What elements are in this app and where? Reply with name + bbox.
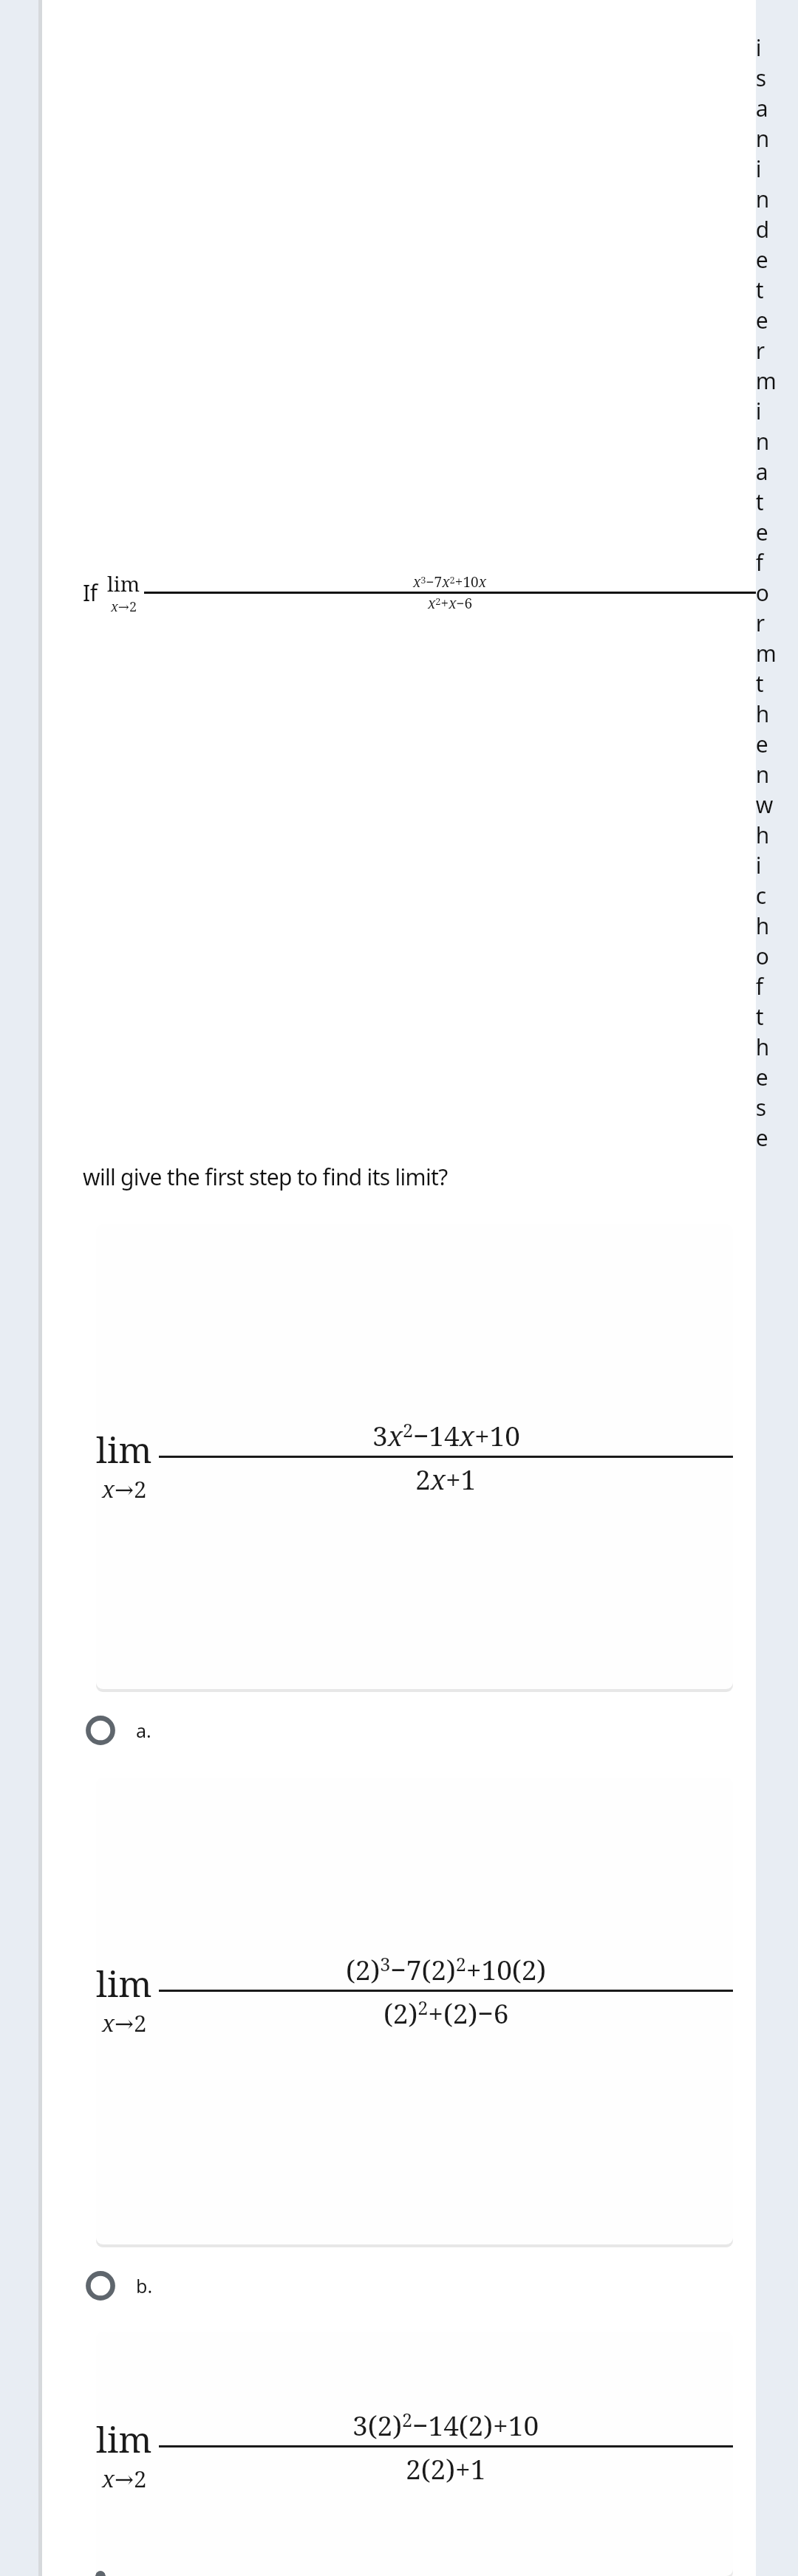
staticText: 2x+1 (415, 1460, 477, 1497)
staticText: lim (96, 1425, 152, 1473)
staticText: x3−7x2+10x (413, 572, 487, 592)
button[interactable]: a. (75, 1689, 756, 1772)
staticText: x→2 (111, 597, 137, 616)
staticText: lim (107, 569, 140, 597)
staticText: (2)2+(2)−6 (383, 1994, 509, 2031)
staticText: b. (136, 2273, 153, 2298)
staticText: will give the first step to find its lim… (83, 1162, 448, 1192)
staticText: If (83, 578, 98, 608)
staticText: x→2 (102, 1473, 147, 1504)
button[interactable]: b. (75, 2244, 756, 2327)
staticText: 3(2)2−14(2)+10 (352, 2406, 539, 2443)
staticText: (2)3−7(2)2+10(2) (346, 1950, 547, 1987)
staticText: x→2 (102, 2007, 147, 2038)
staticText: x2+x−6 (428, 594, 473, 613)
staticText: 2(2)+1 (406, 2450, 486, 2487)
staticText: 3x2−14x+10 (372, 1417, 520, 1453)
staticText: x→2 (102, 2463, 147, 2494)
staticText: lim (96, 2415, 152, 2463)
staticText: lim (96, 1959, 152, 2007)
staticText: a. (136, 1718, 151, 1743)
